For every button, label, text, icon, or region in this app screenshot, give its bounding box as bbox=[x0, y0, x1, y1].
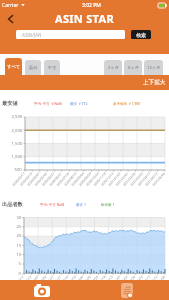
button[interactable]: 検索 bbox=[131, 30, 151, 39]
button[interactable]: 12ヶ月 bbox=[144, 60, 163, 75]
staticText: 6ヶ月 bbox=[128, 65, 139, 71]
staticText: 上下拡大 bbox=[143, 79, 166, 86]
staticText: 12ヶ月 bbox=[147, 65, 161, 71]
button[interactable]: ASIN/JAN bbox=[16, 30, 125, 39]
button[interactable]: すべて bbox=[5, 58, 22, 75]
staticText: 中古 bbox=[48, 65, 57, 70]
button[interactable]: 上下拡大 bbox=[139, 77, 169, 90]
staticText: 検索 bbox=[136, 32, 146, 38]
staticText: 新品 bbox=[29, 65, 38, 70]
button[interactable]: 新品 bbox=[25, 60, 41, 75]
button[interactable]: Back bbox=[4, 12, 17, 25]
button[interactable]: Camera bbox=[0, 280, 84, 300]
staticText: 3:02 PM bbox=[82, 2, 101, 9]
staticText: ASIN STAR bbox=[55, 11, 114, 26]
staticText: 3ヶ月 bbox=[108, 65, 119, 71]
staticText: すべて bbox=[7, 64, 21, 69]
button[interactable]: 3ヶ月 bbox=[104, 60, 122, 75]
staticText: ASIN/JAN bbox=[22, 32, 42, 38]
button[interactable]: List bbox=[84, 280, 169, 300]
button[interactable]: 中古 bbox=[44, 60, 60, 75]
staticText: Carrier bbox=[2, 2, 19, 9]
button[interactable]: 6ヶ月 bbox=[124, 60, 142, 75]
